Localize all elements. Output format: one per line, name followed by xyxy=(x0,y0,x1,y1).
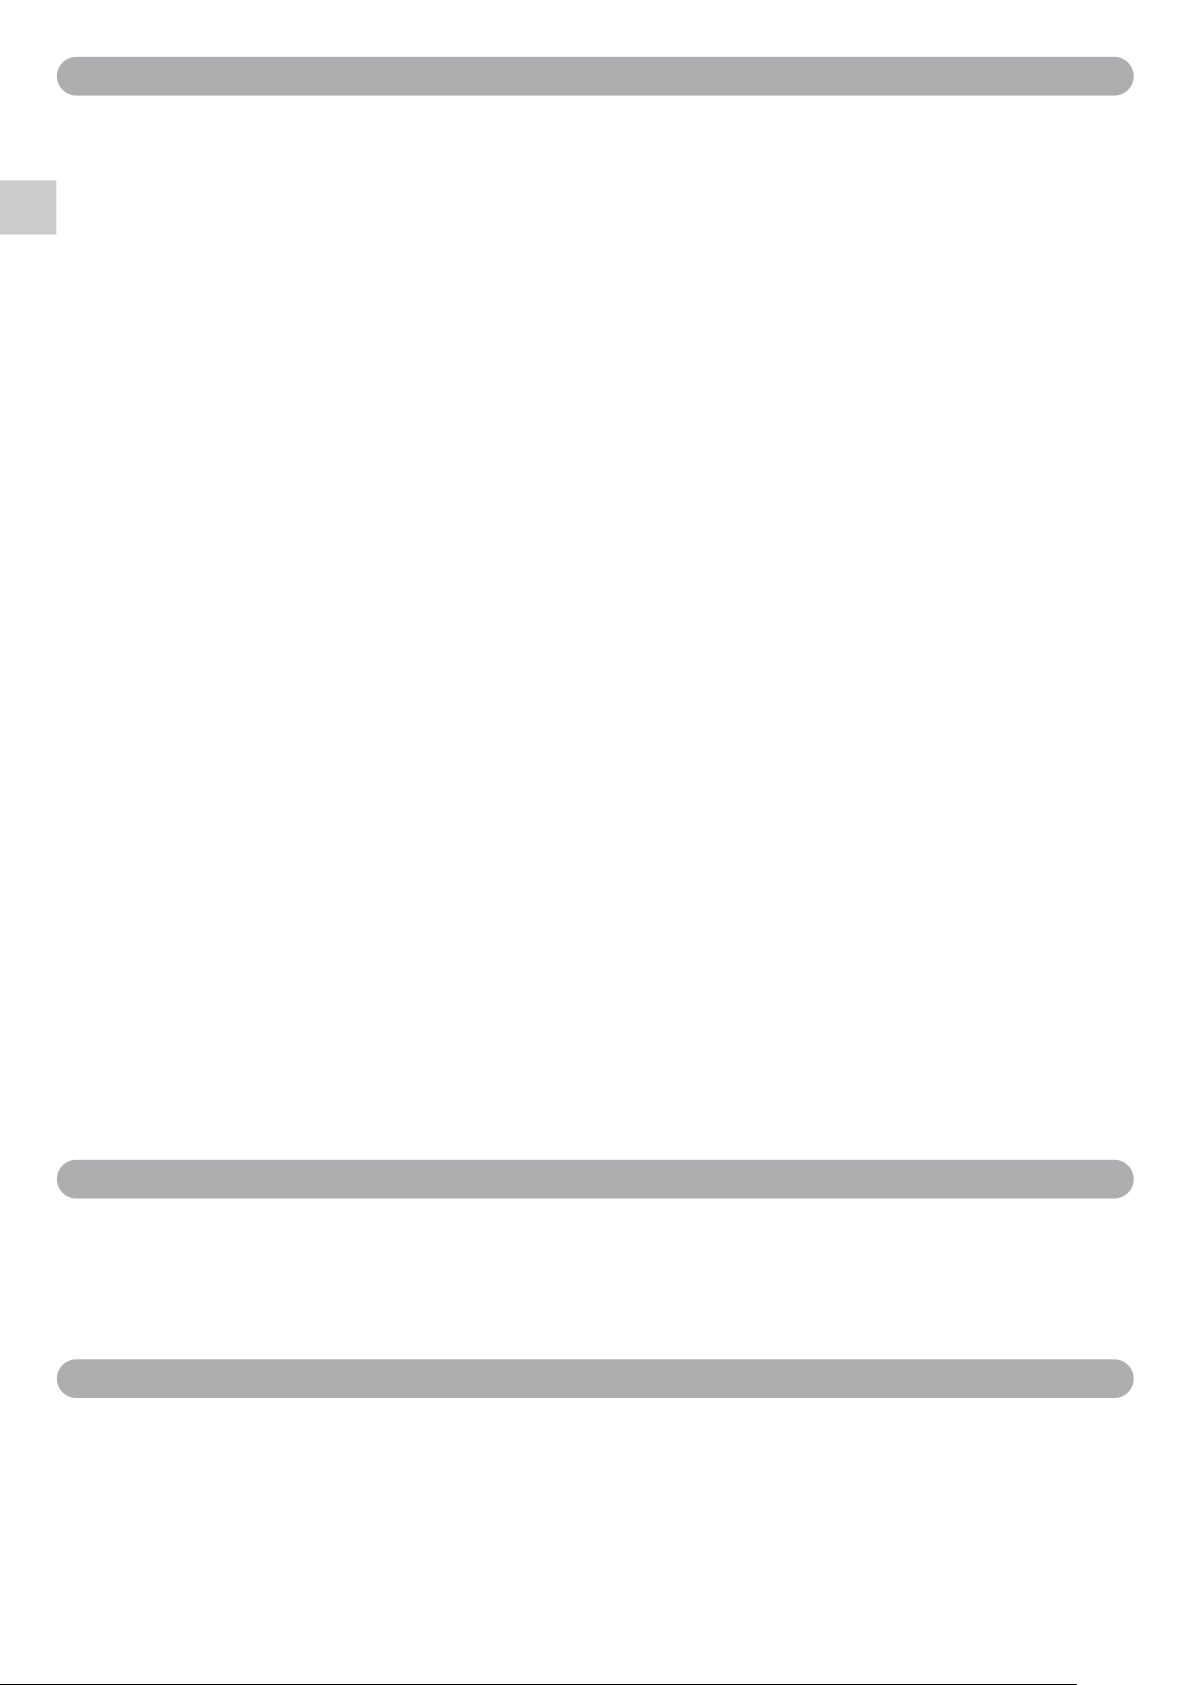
button[interactable]: Secondary action xyxy=(57,1359,1134,1398)
button[interactable]: Open item xyxy=(0,180,56,234)
button[interactable]: Search xyxy=(57,57,1134,96)
button[interactable]: Primary action xyxy=(57,1160,1134,1198)
